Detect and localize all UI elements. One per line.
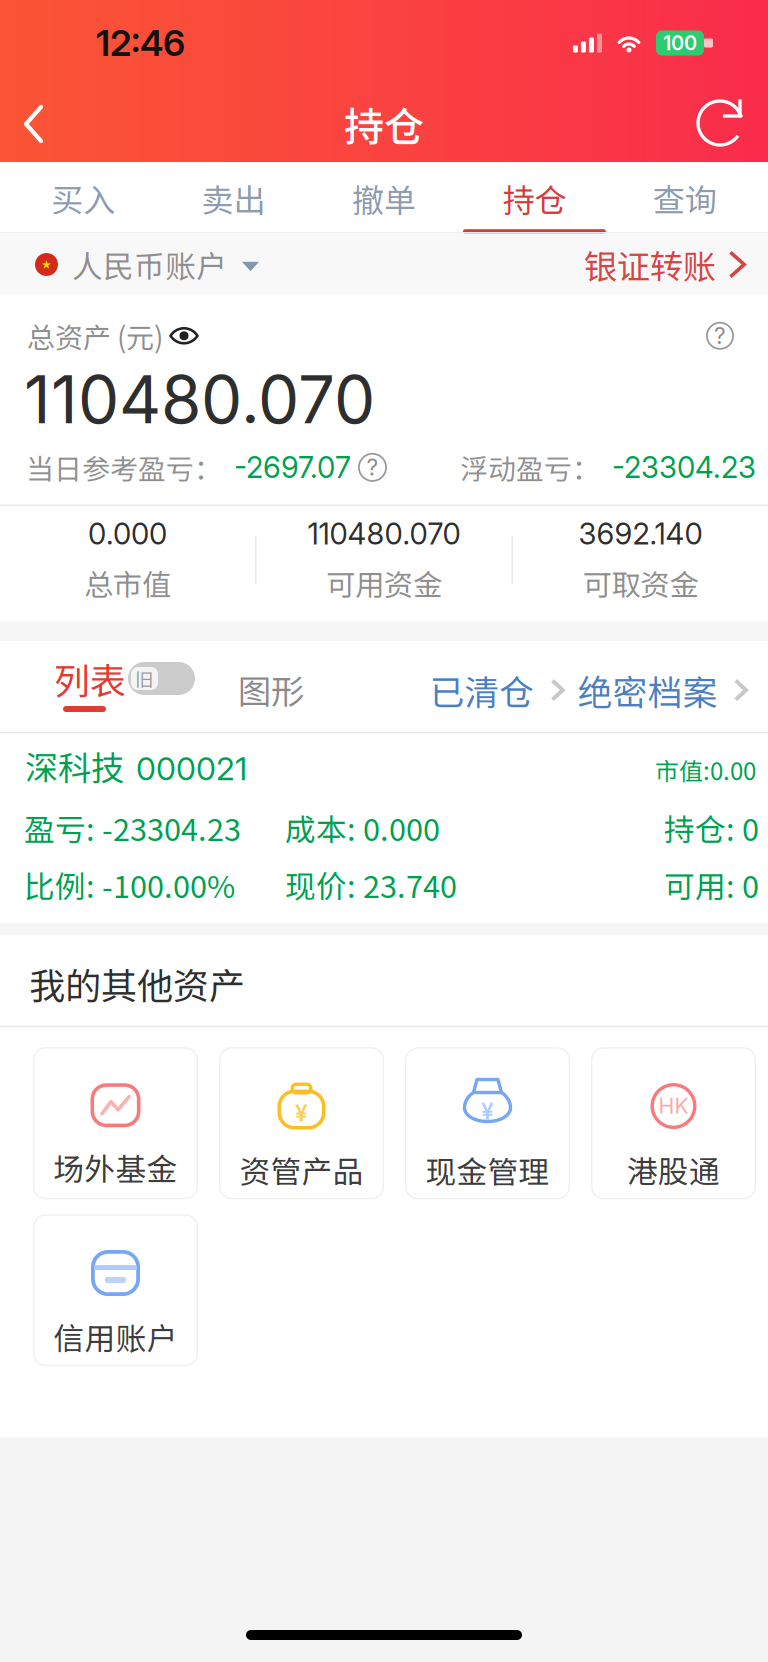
- staticText: 现金管理: [425, 1148, 549, 1192]
- staticText: 人民币账户: [72, 242, 227, 287]
- button[interactable]: HK: [591, 1047, 756, 1199]
- staticText: 卖出: [202, 175, 266, 221]
- staticText: 12:46: [96, 21, 185, 65]
- staticText: 110480.070: [307, 516, 460, 552]
- button[interactable]: 买入: [8, 162, 158, 232]
- button[interactable]: 场外基金: [33, 1047, 198, 1199]
- button[interactable]: 图形: [195, 644, 324, 727]
- staticText: 100: [663, 31, 697, 55]
- staticText: ★: [41, 257, 52, 271]
- staticText: 旧: [135, 665, 154, 692]
- button[interactable]: ¥: [405, 1047, 570, 1199]
- staticText: 0.000: [88, 516, 167, 552]
- button[interactable]: ★: [0, 233, 279, 295]
- button[interactable]: Back: [0, 86, 66, 162]
- staticText: 已清仓: [429, 665, 534, 715]
- staticText: 总市值: [84, 562, 171, 604]
- staticText: ¥: [481, 1098, 494, 1125]
- button[interactable]: Toggle balance visibility: [163, 320, 207, 352]
- button[interactable]: 查询: [610, 162, 760, 232]
- button[interactable]: 绝密档案: [565, 644, 768, 729]
- staticText: 总资产 (元): [27, 315, 163, 356]
- button[interactable]: 银证转账: [564, 233, 768, 295]
- button[interactable]: ¥: [219, 1047, 384, 1199]
- staticText: 比例: -100.00%: [24, 862, 235, 907]
- button[interactable]: 已清仓: [429, 644, 565, 729]
- staticText: 场外基金: [53, 1145, 177, 1190]
- staticText: 持仓: 0: [664, 805, 759, 850]
- staticText: 成本: 0.000: [285, 805, 440, 850]
- staticText: ?: [714, 322, 726, 349]
- button[interactable]: Help about daily P/L: [351, 450, 393, 485]
- staticText: HK: [658, 1093, 688, 1119]
- staticText: 持仓: [502, 175, 566, 221]
- button[interactable]: Help: [700, 318, 740, 354]
- staticText: -23304.23: [612, 450, 756, 485]
- button[interactable]: 卖出: [158, 162, 309, 232]
- staticText: 持仓: [344, 95, 424, 153]
- staticText: 可用: 0: [664, 862, 759, 907]
- button[interactable]: 深科技: [0, 734, 768, 924]
- staticText: 110480.070: [24, 360, 375, 439]
- staticText: 买入: [51, 175, 115, 221]
- staticText: -2697.07: [234, 450, 351, 485]
- button[interactable]: Refresh: [676, 86, 768, 162]
- button[interactable]: 列表: [0, 644, 195, 712]
- staticText: 深科技: [25, 741, 124, 790]
- staticText: 银证转账: [584, 240, 716, 289]
- staticText: 盈亏: -23304.23: [24, 805, 241, 850]
- staticText: ¥: [295, 1099, 308, 1127]
- staticText: 当日参考盈亏：: [26, 447, 222, 488]
- staticText: 市值:0.00: [655, 752, 756, 787]
- staticText: 信用账户: [53, 1314, 177, 1359]
- staticText: 可用资金: [326, 562, 442, 604]
- staticText: 我的其他资产: [29, 958, 245, 1010]
- staticText: 资管产品: [239, 1147, 363, 1192]
- button[interactable]: 持仓: [459, 162, 610, 232]
- staticText: 图形: [238, 665, 304, 713]
- staticText: 撤单: [352, 175, 416, 221]
- staticText: 浮动盈亏：: [460, 447, 600, 488]
- staticText: 现价: 23.740: [285, 862, 457, 907]
- button[interactable]: 撤单: [309, 162, 459, 232]
- staticText: 可取资金: [582, 562, 698, 604]
- staticText: 列表: [54, 652, 126, 704]
- staticText: 港股通: [627, 1147, 720, 1192]
- staticText: 绝密档案: [578, 665, 718, 715]
- staticText: 3692.140: [578, 516, 702, 552]
- staticText: ?: [366, 454, 378, 481]
- staticText: 000021: [136, 749, 247, 788]
- staticText: 查询: [653, 175, 717, 221]
- button[interactable]: 信用账户: [33, 1214, 198, 1366]
